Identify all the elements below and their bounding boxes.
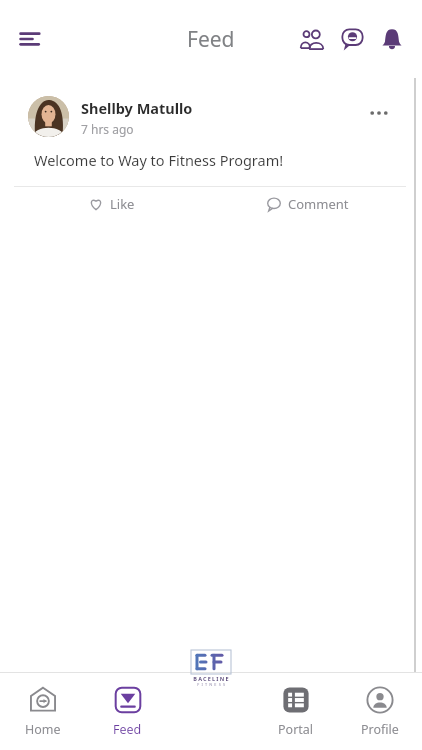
button[interactable]: Home: [0, 673, 85, 750]
staticText: Comment: [288, 195, 349, 213]
button[interactable]: Menu: [10, 17, 54, 61]
staticText: Welcome to Way to Fitness Program!: [34, 150, 284, 170]
staticText: Feed: [187, 25, 235, 54]
staticText: Shellby Matullo: [81, 98, 193, 118]
staticText: Like: [110, 195, 135, 213]
button[interactable]: Messages: [332, 19, 372, 59]
button[interactable]: Shellby Matullo avatar: [28, 96, 69, 137]
staticText: Home: [25, 721, 61, 738]
button[interactable]: Portal: [254, 673, 338, 750]
staticText: 7 hrs ago: [81, 121, 134, 137]
button[interactable]: Notifications: [372, 19, 412, 59]
button[interactable]: Like: [14, 187, 210, 221]
button[interactable]: Shellby Matullo avatar: [14, 84, 406, 223]
staticText: BACELINE: [193, 675, 230, 682]
button[interactable]: People: [292, 19, 332, 59]
button[interactable]: Comment: [210, 187, 406, 221]
button[interactable]: Profile: [338, 673, 422, 750]
staticText: F I T N E S S: [197, 682, 226, 686]
staticText: Profile: [361, 721, 399, 738]
staticText: Portal: [278, 721, 314, 738]
button[interactable]: More options: [362, 96, 396, 130]
staticText: Feed: [113, 721, 142, 738]
button[interactable]: Feed: [85, 673, 170, 750]
